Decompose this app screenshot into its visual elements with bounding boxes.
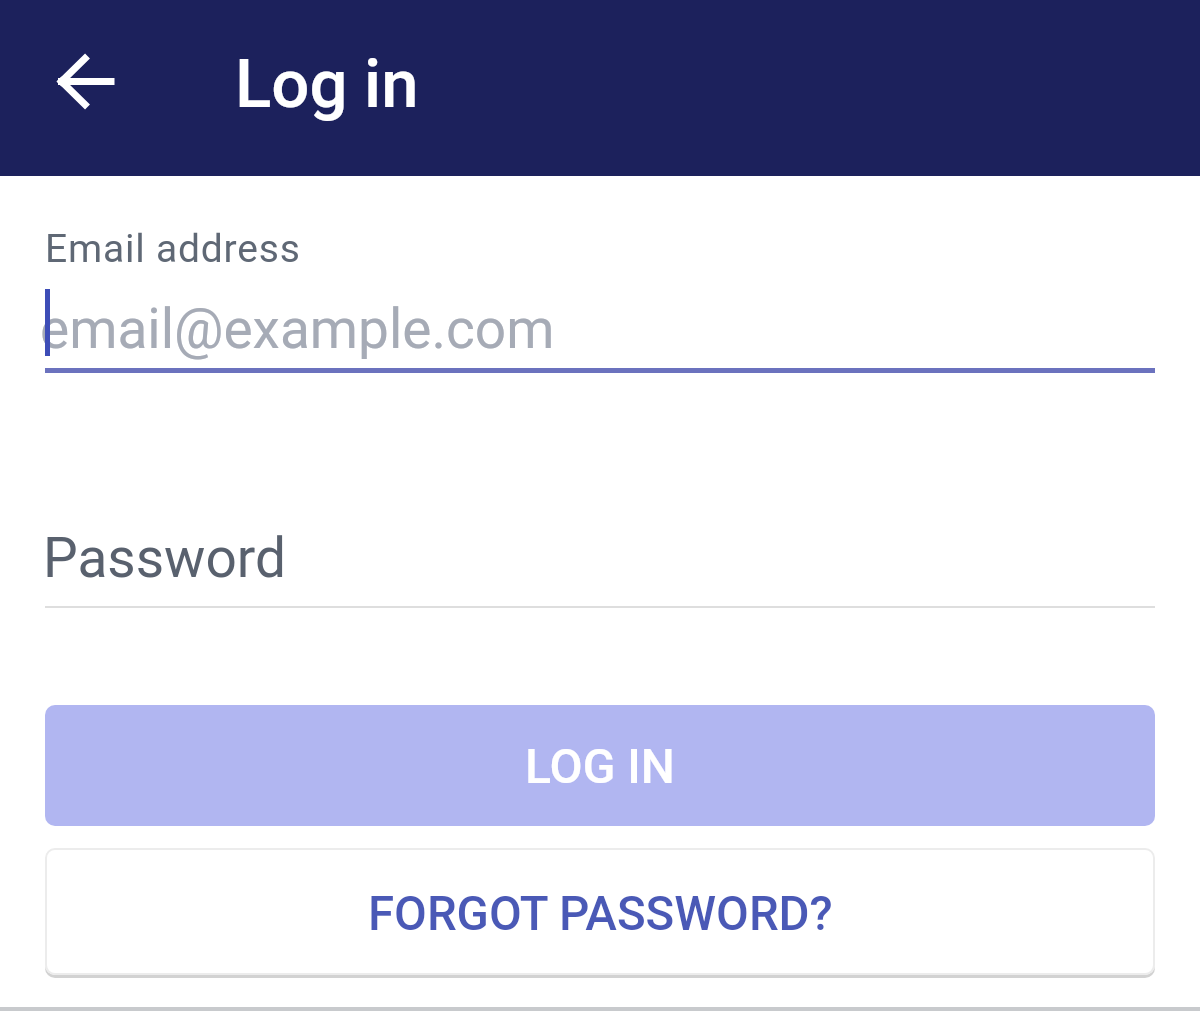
staticText: LOG IN xyxy=(525,738,675,794)
staticText: Log in xyxy=(235,45,419,124)
button[interactable]: FORGOT PASSWORD? xyxy=(45,848,1155,975)
staticText: email@example.com xyxy=(40,297,555,361)
staticText: FORGOT PASSWORD? xyxy=(368,886,833,942)
button[interactable] xyxy=(38,34,134,130)
staticText: Password xyxy=(43,526,286,590)
button[interactable]: LOG IN xyxy=(45,705,1155,826)
staticText: Email address xyxy=(45,226,301,272)
